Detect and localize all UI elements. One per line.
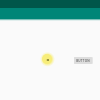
staticText: BUTTON bbox=[76, 59, 90, 63]
button[interactable]: BUTTON bbox=[74, 57, 92, 64]
button[interactable]: Send email bbox=[42, 54, 52, 64]
